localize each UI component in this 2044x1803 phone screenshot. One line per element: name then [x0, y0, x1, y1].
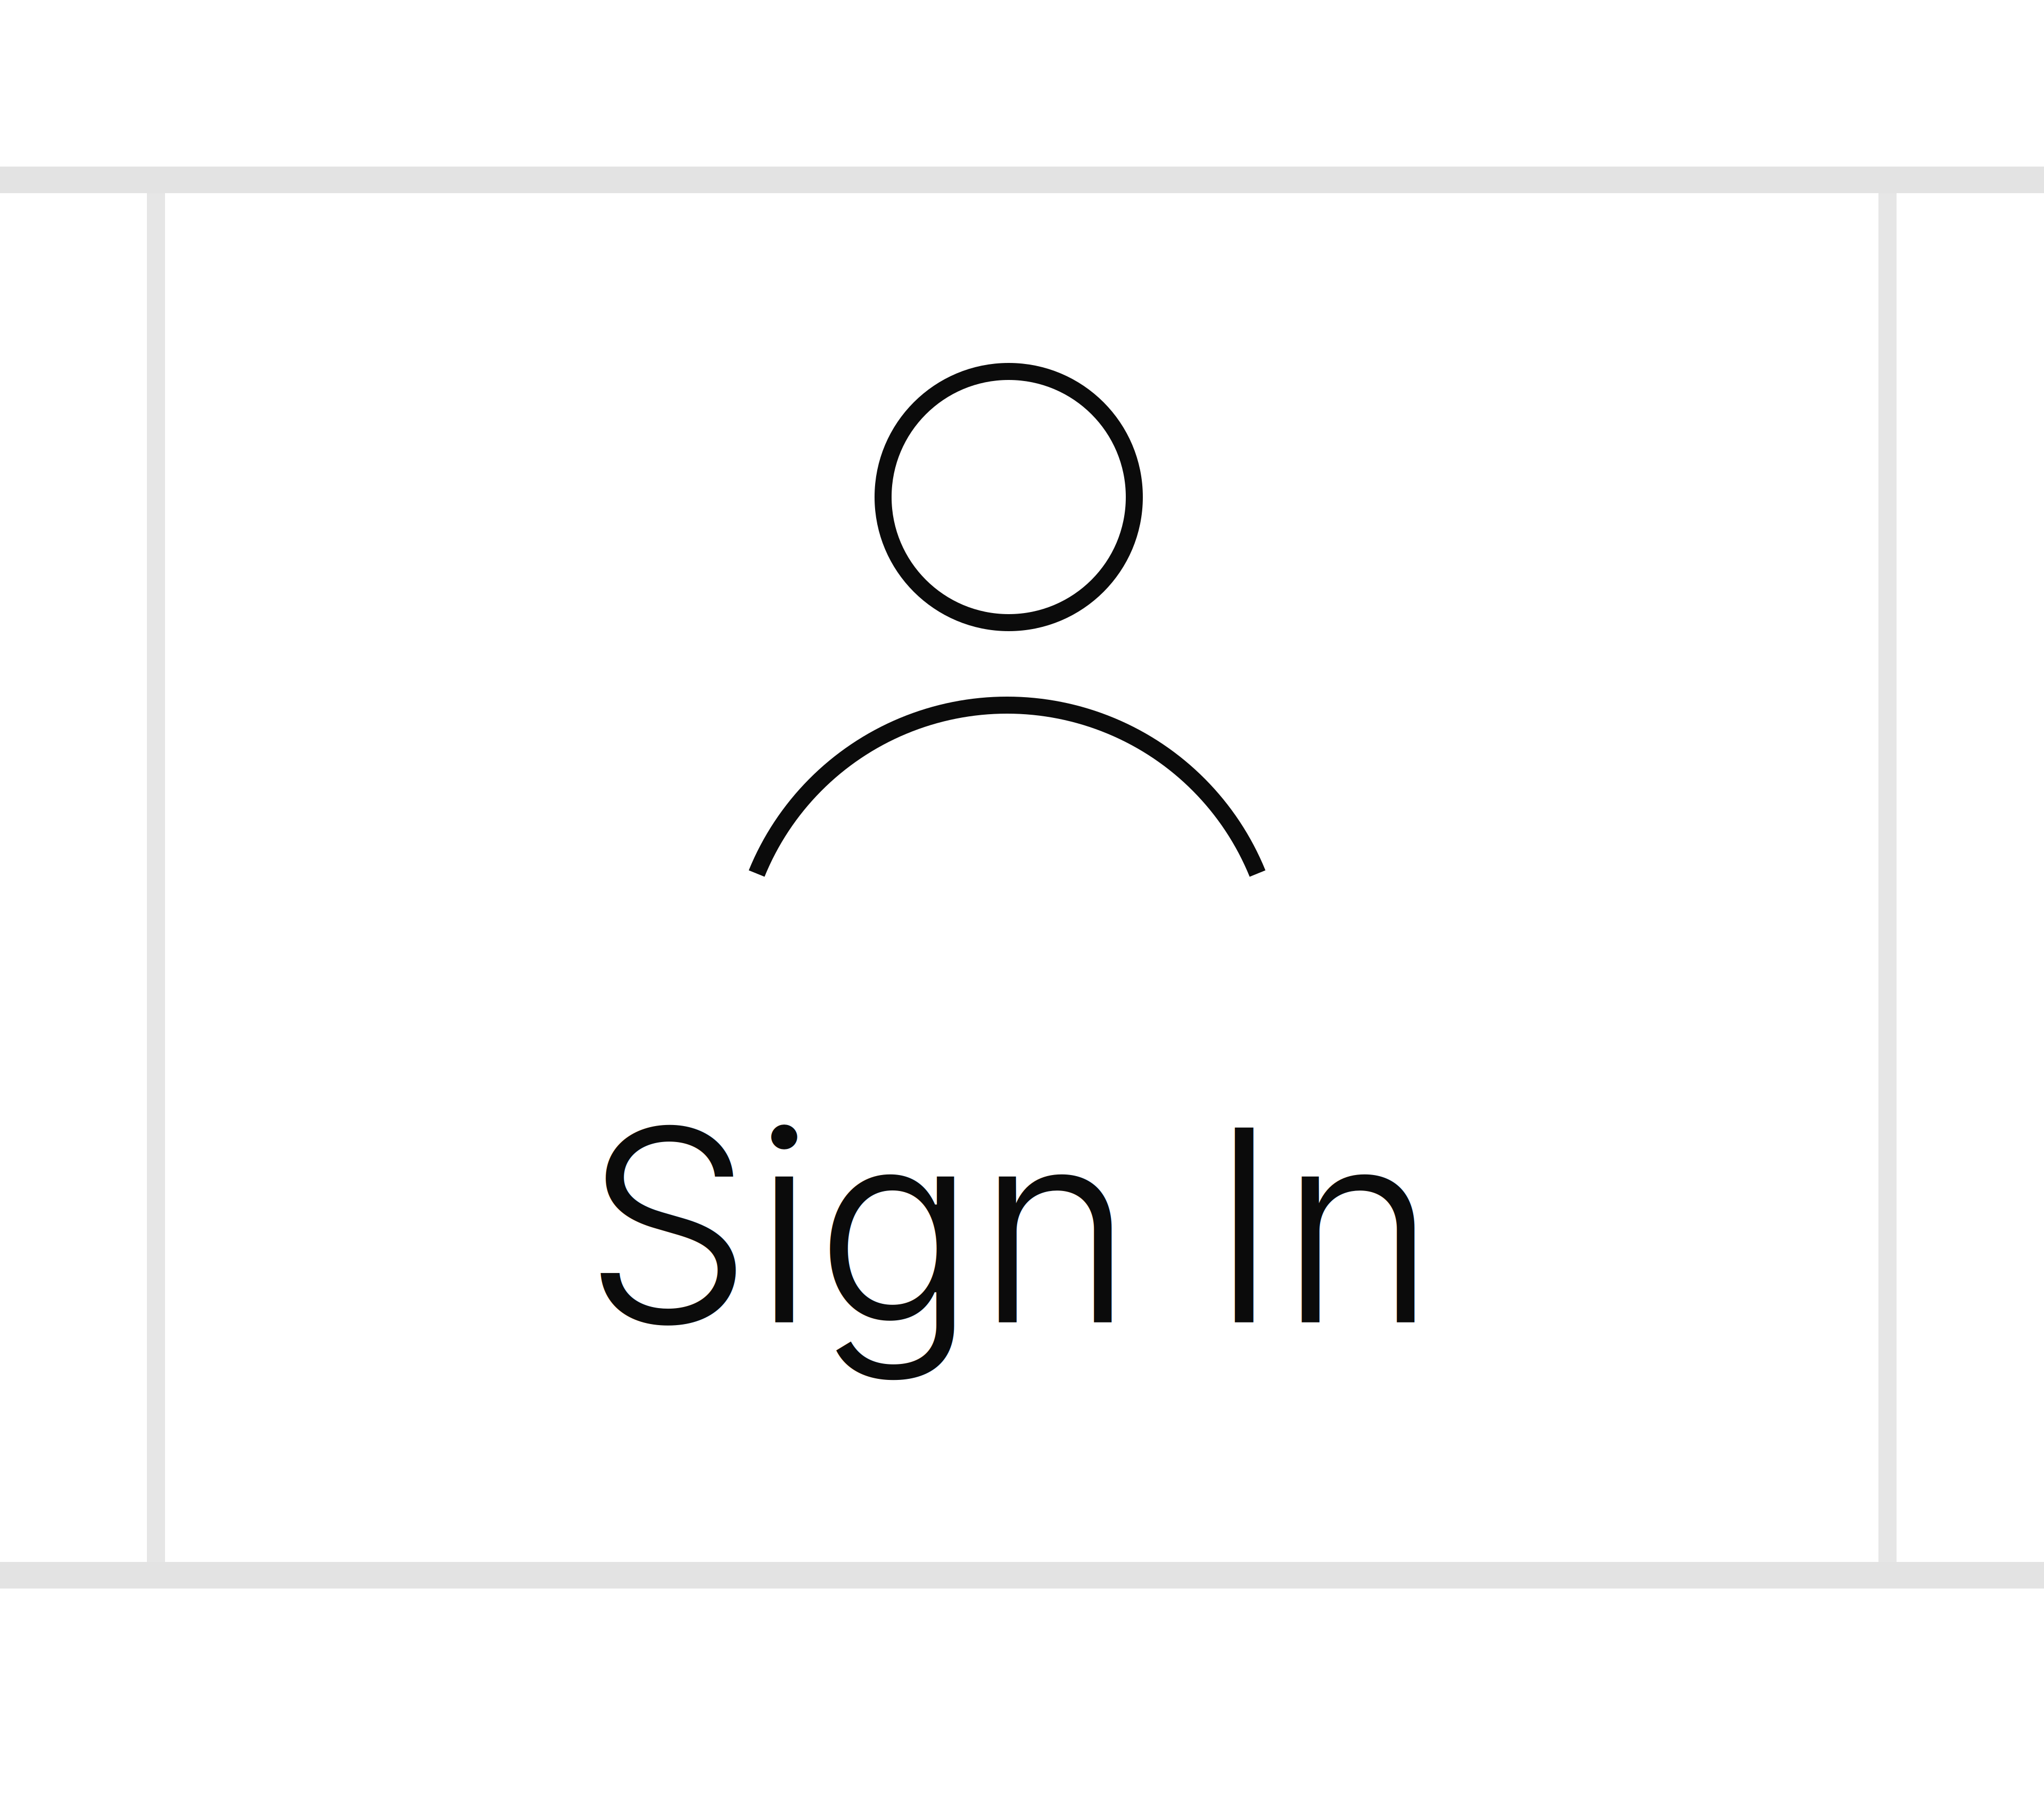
button[interactable]: Sign In [156, 180, 1888, 1575]
staticText: Sign In [584, 1063, 1437, 1387]
